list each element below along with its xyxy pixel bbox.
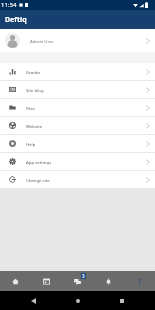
staticText: Files bbox=[26, 105, 35, 111]
staticText: Help bbox=[26, 141, 36, 147]
button[interactable]: Home bbox=[0, 271, 31, 291]
button[interactable]: Grades bbox=[0, 63, 155, 80]
button[interactable]: More options bbox=[124, 271, 155, 291]
button[interactable]: Admin User bbox=[0, 29, 155, 52]
button[interactable]: Notifications bbox=[93, 271, 124, 291]
button[interactable]: Home bbox=[67, 291, 89, 310]
button[interactable]: App settings bbox=[0, 153, 155, 170]
staticText: 3 bbox=[82, 273, 85, 279]
staticText: 11:54 bbox=[1, 1, 17, 9]
button[interactable]: Help bbox=[0, 135, 155, 152]
button[interactable]: Messages bbox=[62, 271, 93, 291]
button[interactable]: Website bbox=[0, 117, 155, 134]
button[interactable]: Files bbox=[0, 99, 155, 116]
button[interactable]: Recents bbox=[111, 291, 133, 310]
staticText: Change site bbox=[26, 177, 50, 183]
button[interactable]: Change site bbox=[0, 171, 155, 188]
button[interactable]: Site blog bbox=[0, 81, 155, 98]
staticText: Deftiq bbox=[5, 15, 27, 25]
staticText: Grades bbox=[26, 69, 41, 75]
staticText: App settings bbox=[26, 159, 52, 165]
button[interactable]: Calendar bbox=[31, 271, 62, 291]
staticText: Website bbox=[26, 123, 43, 129]
button[interactable]: Back bbox=[22, 291, 44, 310]
staticText: Site blog bbox=[26, 87, 44, 93]
staticText: Admin User bbox=[30, 38, 54, 44]
